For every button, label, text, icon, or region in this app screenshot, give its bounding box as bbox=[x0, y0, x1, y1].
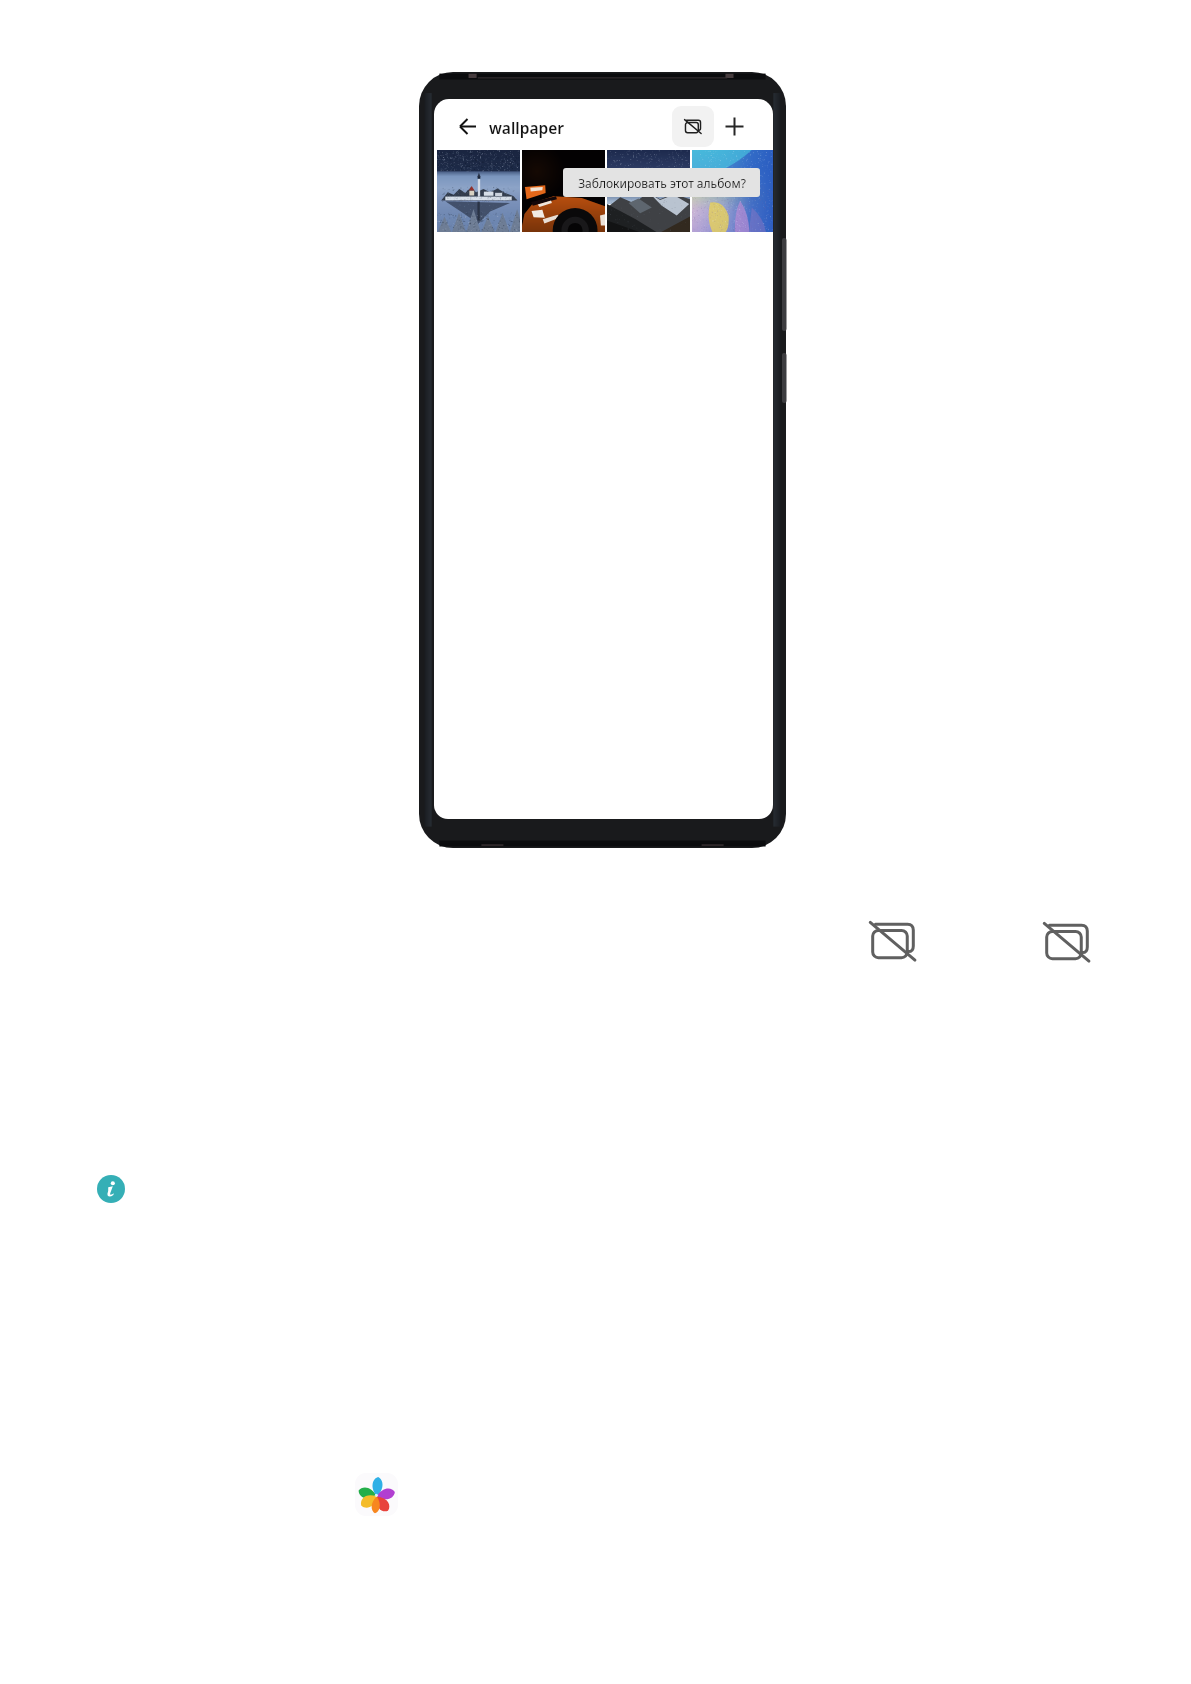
button[interactable] bbox=[437, 150, 520, 232]
button[interactable]: Add bbox=[714, 106, 754, 147]
button[interactable] bbox=[522, 150, 605, 232]
button[interactable]: Blocked album bbox=[866, 914, 920, 968]
button[interactable]: Заблокировать этот альбом? bbox=[563, 168, 760, 197]
button[interactable]: Back bbox=[448, 107, 488, 146]
staticText: wallpaper bbox=[489, 117, 564, 138]
button[interactable]: Block album bbox=[672, 106, 714, 147]
button[interactable] bbox=[692, 150, 773, 232]
button[interactable]: Gallery bbox=[355, 1473, 398, 1516]
button[interactable] bbox=[607, 150, 690, 232]
staticText: Заблокировать этот альбом? bbox=[578, 175, 746, 191]
button[interactable]: Blocked album bbox=[1040, 915, 1094, 969]
button[interactable]: Info bbox=[97, 1175, 125, 1203]
